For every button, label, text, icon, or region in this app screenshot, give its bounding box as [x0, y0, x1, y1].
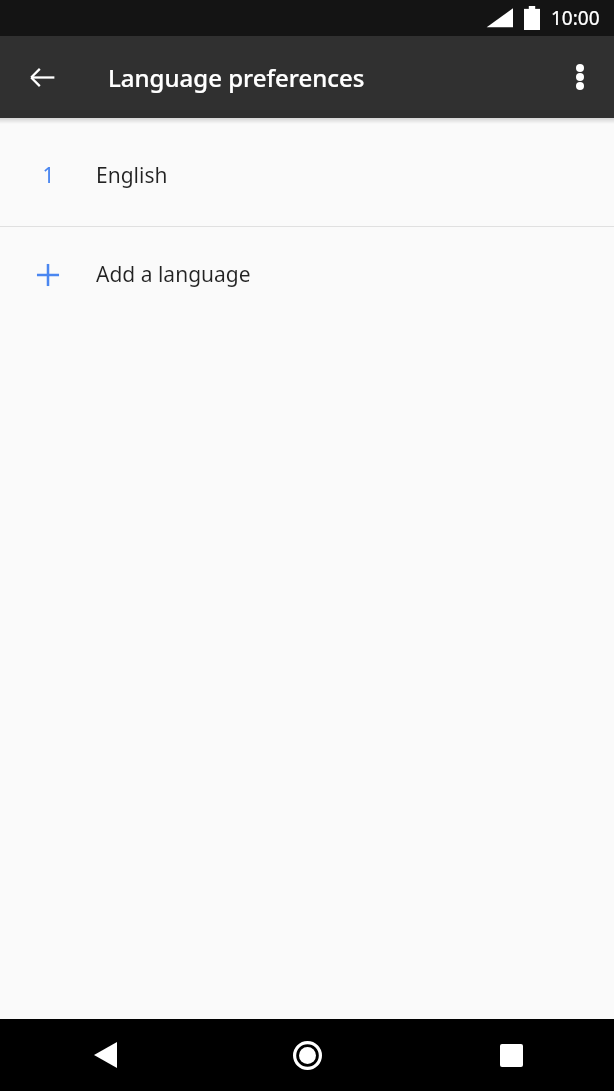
button[interactable]: Recent apps: [409, 1019, 614, 1091]
staticText: 1: [42, 161, 55, 190]
button[interactable]: Navigate up: [14, 49, 70, 105]
button[interactable]: Home: [205, 1019, 409, 1091]
button[interactable]: 1: [0, 124, 614, 226]
staticText: Language preferences: [108, 61, 365, 94]
staticText: Add a language: [96, 260, 251, 289]
button[interactable]: Back: [0, 1019, 205, 1091]
staticText: English: [96, 161, 168, 190]
staticText: 10:00: [551, 5, 600, 31]
button[interactable]: Add a language: [0, 227, 614, 322]
button[interactable]: More options: [552, 49, 608, 105]
